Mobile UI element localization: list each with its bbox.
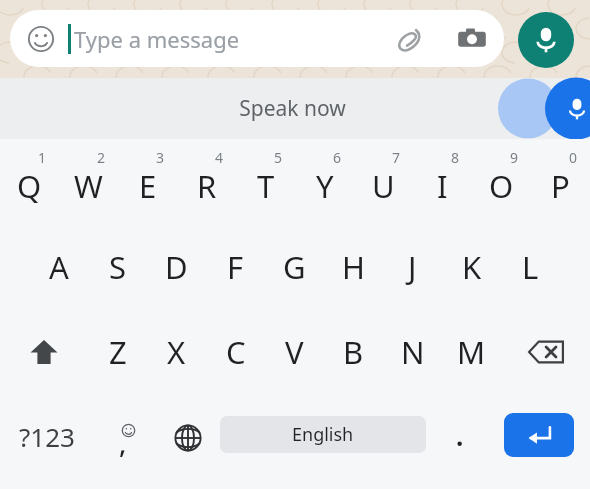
button[interactable]: Space [220,416,426,453]
staticText: 8 [451,148,460,167]
staticText: , [119,424,127,461]
staticText: 2 [97,148,106,167]
button[interactable]: Camera [450,17,494,61]
staticText: J [408,246,417,288]
button[interactable]: Z [88,309,147,394]
staticText: 6 [333,148,342,167]
button[interactable]: M [442,309,501,394]
staticText: 1 [38,148,47,167]
staticText: F [227,246,244,288]
button[interactable]: Comma, emoji [93,394,156,489]
button[interactable]: C [206,309,265,394]
button[interactable]: S [88,224,147,309]
staticText: G [283,246,306,288]
button[interactable]: 9 [472,139,531,224]
button[interactable]: Enter [504,413,574,457]
staticText: . [456,418,464,453]
staticText: ?123 [19,419,75,454]
staticText: N [401,331,425,373]
button[interactable]: Attach [388,17,432,61]
staticText: Speak now [239,94,346,123]
staticText: 7 [392,148,401,167]
staticText: X [167,331,186,373]
staticText: 9 [510,148,519,167]
staticText: C [226,331,246,373]
button[interactable]: G [265,224,324,309]
button[interactable]: Stop voice input [472,78,590,139]
staticText: 5 [274,148,283,167]
button[interactable]: 0 [531,139,590,224]
button[interactable]: N [383,309,442,394]
staticText: Type a message [74,24,240,54]
staticText: E [139,165,157,207]
staticText: R [197,165,217,207]
button[interactable]: F [206,224,265,309]
button[interactable]: B [324,309,383,394]
staticText: D [165,246,188,288]
staticText: H [342,246,365,288]
button[interactable]: H [324,224,383,309]
staticText: 0 [569,148,578,167]
staticText: I [437,165,448,207]
staticText: U [372,165,395,207]
button[interactable]: 8 [413,139,472,224]
button[interactable]: 7 [354,139,413,224]
staticText: O [489,165,514,207]
button[interactable]: D [147,224,206,309]
staticText: S [109,246,127,288]
staticText: K [462,246,482,288]
staticText: Z [109,331,127,373]
staticText: W [74,165,103,207]
button[interactable]: . [426,394,493,489]
button[interactable]: ?123 [0,394,93,489]
staticText: P [551,165,570,207]
button[interactable]: Change language [156,394,220,489]
staticText: Q [17,165,42,207]
button[interactable]: Emoji [10,10,504,67]
button[interactable]: 2 [59,139,118,224]
button[interactable]: K [442,224,501,309]
button[interactable]: 5 [236,139,295,224]
button[interactable]: X [147,309,206,394]
button[interactable]: L [501,224,560,309]
button[interactable]: Voice message [518,12,574,68]
button[interactable]: 3 [118,139,177,224]
staticText: L [522,246,539,288]
button[interactable]: J [383,224,442,309]
staticText: A [49,246,69,288]
staticText: Y [316,165,334,207]
staticText: B [343,331,364,373]
button[interactable]: 6 [295,139,354,224]
staticText: 4 [215,148,224,167]
staticText: English [292,422,354,447]
button[interactable]: A [29,224,88,309]
staticText: M [457,331,486,373]
button[interactable]: Backspace [501,309,590,394]
button[interactable]: 1 [0,139,59,224]
button[interactable]: 4 [177,139,236,224]
staticText: 3 [156,148,165,167]
button[interactable]: Emoji [24,22,58,56]
staticText: T [257,165,275,207]
button[interactable]: Shift [0,309,88,394]
staticText: V [285,331,304,373]
button[interactable]: V [265,309,324,394]
